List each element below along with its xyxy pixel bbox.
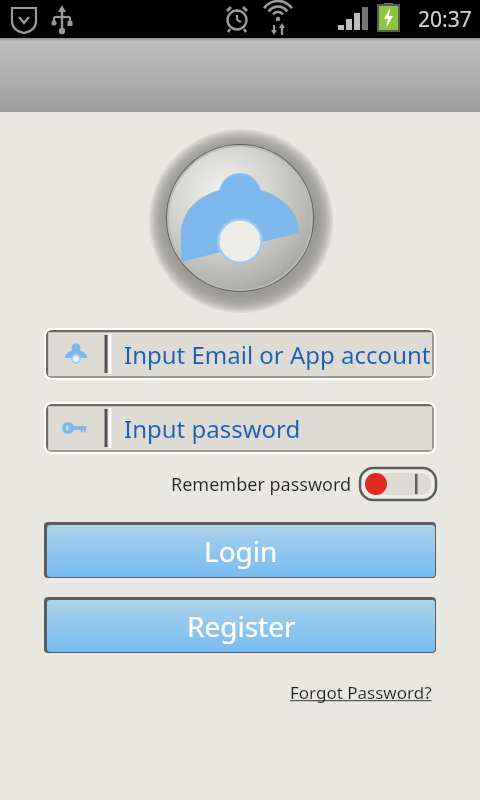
button[interactable]: Input Email or App account xyxy=(46,330,434,378)
button[interactable]: Input password xyxy=(46,404,434,452)
staticText: Remember password xyxy=(171,472,352,497)
staticText: Input Email or App account xyxy=(124,338,431,371)
staticText: Forgot Password? xyxy=(290,681,432,704)
button[interactable]: Remember password xyxy=(171,468,436,500)
button[interactable]: Login xyxy=(47,525,435,577)
staticText: Register xyxy=(187,607,296,645)
button[interactable]: Register xyxy=(47,600,435,652)
button[interactable]: Forgot Password? xyxy=(286,677,436,708)
staticText: Input password xyxy=(124,412,301,445)
staticText: Login xyxy=(204,532,278,570)
staticText: 20:37 xyxy=(418,5,472,34)
other: Remember password toggle xyxy=(360,468,436,500)
